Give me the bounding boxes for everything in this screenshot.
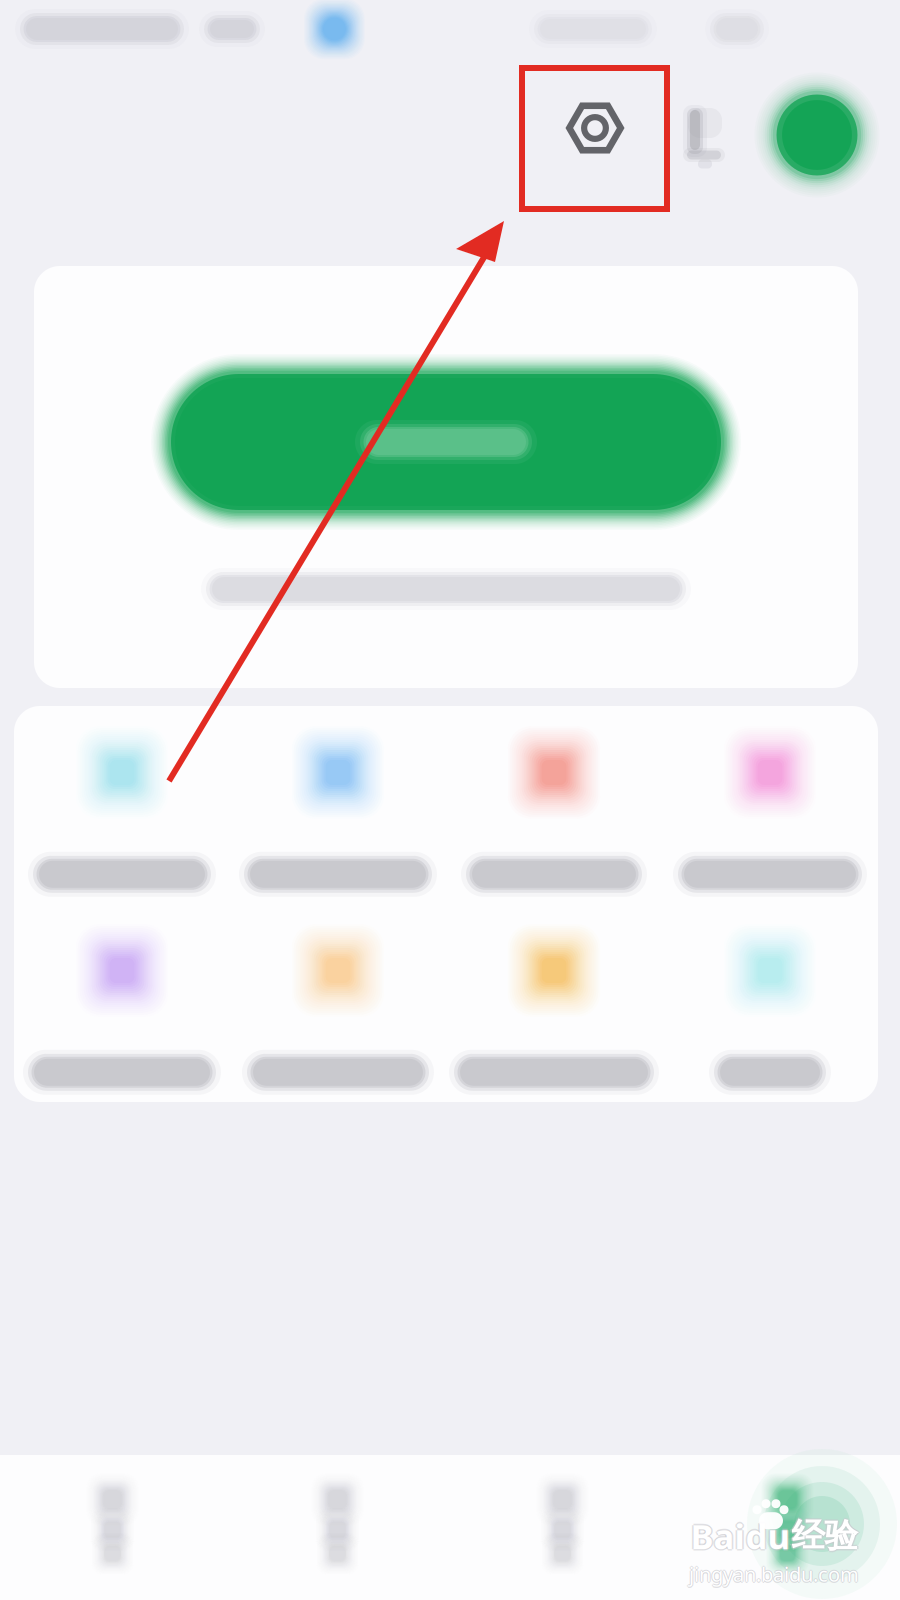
button[interactable]: Tab — [450, 1455, 675, 1600]
button[interactable] — [141, 347, 751, 537]
button[interactable] — [662, 904, 878, 1102]
staticText: jingyan.baidu.com — [690, 1561, 860, 1587]
button[interactable]: Tab — [0, 1455, 225, 1600]
button[interactable]: Tab — [225, 1455, 450, 1600]
button[interactable] — [662, 706, 878, 904]
staticText: 经验 — [793, 1515, 859, 1556]
staticText: du — [745, 1514, 790, 1560]
staticText: Bai — [690, 1511, 744, 1557]
staticText: 经验 — [791, 1515, 857, 1556]
staticText: 经验 — [791, 1517, 857, 1557]
button[interactable] — [446, 904, 662, 1102]
staticText: 经验 — [791, 1514, 857, 1555]
staticText: du — [745, 1513, 790, 1559]
button[interactable] — [230, 904, 446, 1102]
staticText: du — [745, 1511, 790, 1557]
button[interactable]: Notifications — [658, 58, 750, 212]
staticText: Bai — [690, 1514, 744, 1560]
button[interactable]: Profile — [750, 58, 884, 212]
staticText: 经验 — [790, 1515, 856, 1556]
staticText: du — [744, 1513, 789, 1559]
staticText: jingyan.baidu.com — [689, 1560, 859, 1586]
button[interactable] — [446, 706, 662, 904]
staticText: Bai — [690, 1513, 744, 1559]
button[interactable] — [14, 706, 230, 904]
staticText: du — [747, 1513, 792, 1559]
staticText: Bai — [689, 1513, 743, 1559]
button[interactable] — [230, 706, 446, 904]
staticText: jingyan.baidu.com — [688, 1561, 858, 1587]
button[interactable] — [14, 904, 230, 1102]
staticText: jingyan.baidu.com — [689, 1561, 859, 1587]
staticText: Bai — [692, 1513, 746, 1559]
button[interactable]: Settings — [512, 58, 658, 212]
staticText: jingyan.baidu.com — [689, 1562, 859, 1588]
button[interactable]: Profile tab — [675, 1455, 900, 1600]
